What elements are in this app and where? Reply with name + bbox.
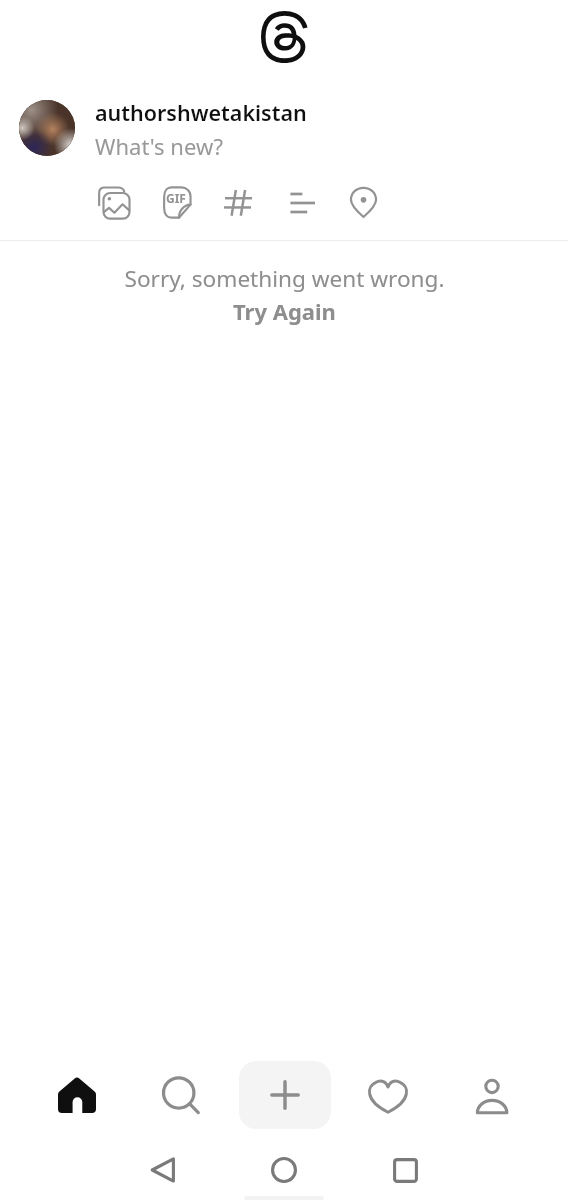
- button[interactable]: Profile: [447, 1062, 537, 1130]
- button[interactable]: Threads: [261, 11, 307, 63]
- staticText: What's new?: [95, 131, 224, 158]
- button[interactable]: Create poll: [270, 171, 332, 233]
- button[interactable]: Create: [239, 1061, 331, 1129]
- button[interactable]: Try Again: [233, 296, 336, 326]
- button[interactable]: Search: [136, 1062, 226, 1130]
- button[interactable]: Add GIF: [145, 171, 207, 233]
- staticText: GIF: [166, 190, 186, 206]
- button[interactable]: Add location: [332, 171, 394, 233]
- staticText: Sorry, something went wrong.: [124, 263, 445, 294]
- staticText: authorshwetakistan: [95, 98, 307, 127]
- button[interactable]: Add hashtag: [207, 171, 269, 233]
- button[interactable]: Activity: [343, 1062, 433, 1130]
- button[interactable]: Back: [135, 1142, 191, 1198]
- button[interactable]: Add photo: [82, 171, 144, 233]
- button[interactable]: Profile picture: [19, 100, 75, 156]
- staticText: Try Again: [233, 296, 336, 326]
- button[interactable]: Home: [256, 1142, 312, 1198]
- button[interactable]: authorshwetakistan: [95, 98, 535, 158]
- button[interactable]: Recent apps: [377, 1142, 433, 1198]
- button[interactable]: Home: [32, 1062, 122, 1130]
